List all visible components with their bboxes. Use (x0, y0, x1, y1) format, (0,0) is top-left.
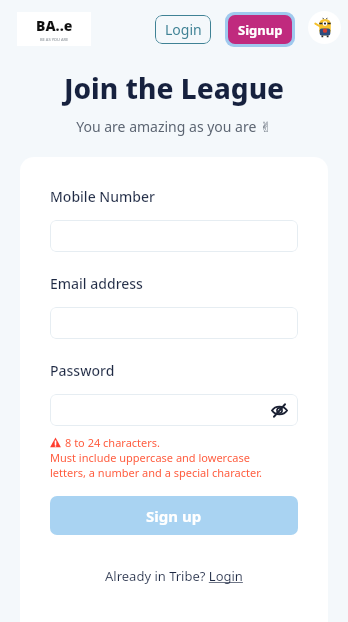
button[interactable]: Already in Tribe? Login (105, 567, 243, 585)
staticText: Login (165, 20, 202, 39)
staticText: You are amazing as you are ✌️ (0, 117, 348, 136)
staticText: BE AS YOU ARE (40, 37, 69, 42)
staticText: Already in Tribe? Login (105, 567, 243, 585)
staticText: Join the League (0, 69, 348, 107)
button[interactable] (50, 307, 298, 339)
staticText: 8 to 24 characters. (65, 435, 161, 450)
staticText: Sign up (146, 506, 202, 526)
button[interactable]: Profile (308, 11, 341, 44)
staticText: Email address (50, 274, 143, 293)
button[interactable]: Signup (228, 15, 292, 44)
button[interactable]: Login (155, 15, 211, 44)
button[interactable]: BARE home (17, 12, 91, 46)
button[interactable]: Sign up (50, 496, 298, 535)
button[interactable] (50, 220, 298, 252)
staticText: BA..e (36, 16, 73, 35)
staticText: Must include uppercase and lowercase let… (50, 450, 298, 480)
button[interactable]: Show password (268, 399, 290, 421)
staticText: Password (50, 361, 115, 380)
staticText: Mobile Number (50, 187, 155, 206)
button[interactable]: Show password (50, 394, 298, 426)
staticText: Signup (238, 21, 283, 39)
